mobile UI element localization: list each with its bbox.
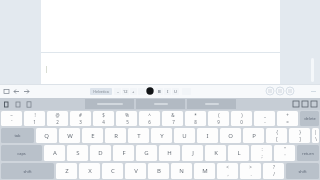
button[interactable]: Suggestion 2	[136, 99, 185, 109]
button[interactable]: |	[312, 128, 319, 143]
staticText: I	[206, 132, 209, 140]
staticText: >	[249, 164, 252, 170]
button[interactable]: R	[105, 128, 126, 143]
staticText: W	[67, 132, 73, 140]
button[interactable]: ?	[263, 163, 284, 179]
staticText: `	[11, 119, 13, 125]
button[interactable]: shift	[286, 163, 319, 179]
button[interactable]: V	[125, 163, 146, 179]
button[interactable]: delete	[300, 111, 319, 126]
staticText: /	[273, 171, 275, 177]
staticText: E	[91, 132, 95, 140]
button[interactable]: B	[156, 88, 163, 95]
button[interactable]: Underline	[311, 101, 317, 107]
staticText: !	[34, 112, 36, 118]
button[interactable]: $	[93, 111, 114, 126]
button[interactable]: &	[162, 111, 183, 126]
button[interactable]: Dismiss toolbar	[310, 88, 317, 95]
staticText: X	[88, 167, 92, 175]
button[interactable]: ^	[139, 111, 160, 126]
button[interactable]: S	[67, 145, 88, 161]
button[interactable]: M	[194, 163, 215, 179]
button[interactable]: >	[240, 163, 261, 179]
button[interactable]: W	[59, 128, 80, 143]
button[interactable]: –	[114, 88, 121, 95]
button[interactable]: Paste	[3, 101, 10, 108]
button[interactable]: Hide keyboard	[3, 88, 10, 95]
staticText: ^	[148, 112, 151, 118]
button[interactable]: +	[277, 111, 298, 126]
button[interactable]: C	[102, 163, 123, 179]
button[interactable]: (	[208, 111, 229, 126]
button[interactable]: Suggestion 1	[85, 99, 134, 109]
button[interactable]: U	[174, 128, 195, 143]
staticText: Q	[44, 132, 49, 140]
staticText: $	[102, 112, 105, 118]
button[interactable]: T	[128, 128, 149, 143]
staticText: "	[284, 146, 286, 152]
button[interactable]: +	[130, 88, 137, 95]
button[interactable]: {	[266, 128, 287, 143]
button[interactable]: Z	[56, 163, 77, 179]
button[interactable]: I	[164, 88, 171, 95]
button[interactable]: tab	[1, 128, 34, 143]
button[interactable]: return	[297, 145, 319, 161]
staticText: 0	[240, 119, 243, 125]
button[interactable]: Undo	[13, 88, 20, 95]
button[interactable]: )	[231, 111, 252, 126]
button[interactable]: E	[82, 128, 103, 143]
button[interactable]: Clipboard	[26, 101, 32, 108]
button[interactable]: A	[44, 145, 65, 161]
button[interactable]: 12	[122, 88, 129, 95]
button[interactable]: }	[289, 128, 310, 143]
button[interactable]: B	[148, 163, 169, 179]
button[interactable]: caps	[1, 145, 42, 161]
button[interactable]: U	[172, 88, 179, 95]
button[interactable]: Helvetica	[90, 88, 112, 95]
button[interactable]: !	[24, 111, 45, 126]
button[interactable]: <	[217, 163, 238, 179]
button[interactable]: P	[243, 128, 264, 143]
staticText: =	[286, 119, 289, 125]
button[interactable]: %	[116, 111, 137, 126]
button[interactable]: Y	[151, 128, 172, 143]
button[interactable]: Bold	[293, 101, 299, 107]
staticText: (	[218, 112, 220, 118]
button[interactable]: @	[47, 111, 68, 126]
staticText: \	[315, 136, 317, 142]
button[interactable]: Redo	[23, 88, 30, 95]
button[interactable]: D	[90, 145, 111, 161]
button[interactable]: O	[220, 128, 241, 143]
button[interactable]: Italic	[302, 101, 308, 107]
staticText: _	[264, 112, 266, 118]
button[interactable]: L	[228, 145, 249, 161]
button[interactable]: :	[251, 145, 272, 161]
button[interactable]: Suggestion 3	[187, 99, 236, 109]
button[interactable]: K	[205, 145, 226, 161]
button[interactable]: List	[286, 87, 294, 95]
button[interactable]: G	[136, 145, 157, 161]
button[interactable]: "	[274, 145, 295, 161]
staticText: delete	[304, 116, 316, 121]
button[interactable]: #	[70, 111, 91, 126]
button[interactable]: F	[113, 145, 134, 161]
button[interactable]: *	[185, 111, 206, 126]
button[interactable]: J	[182, 145, 203, 161]
button[interactable]: Text colour	[146, 87, 154, 95]
button[interactable]: H	[159, 145, 180, 161]
button[interactable]: shift	[1, 163, 54, 179]
button[interactable]: X	[79, 163, 100, 179]
button[interactable]: ~	[1, 111, 22, 126]
button[interactable]: Q	[36, 128, 57, 143]
button[interactable]: Align centre	[276, 87, 284, 95]
button[interactable]: _	[254, 111, 275, 126]
staticText: U	[182, 132, 187, 140]
button[interactable]: Align left	[266, 87, 274, 95]
staticText: shift	[23, 169, 32, 174]
staticText: V	[134, 167, 138, 175]
button[interactable]: Copy	[15, 101, 21, 108]
button[interactable]: I	[197, 128, 218, 143]
button[interactable]: N	[171, 163, 192, 179]
